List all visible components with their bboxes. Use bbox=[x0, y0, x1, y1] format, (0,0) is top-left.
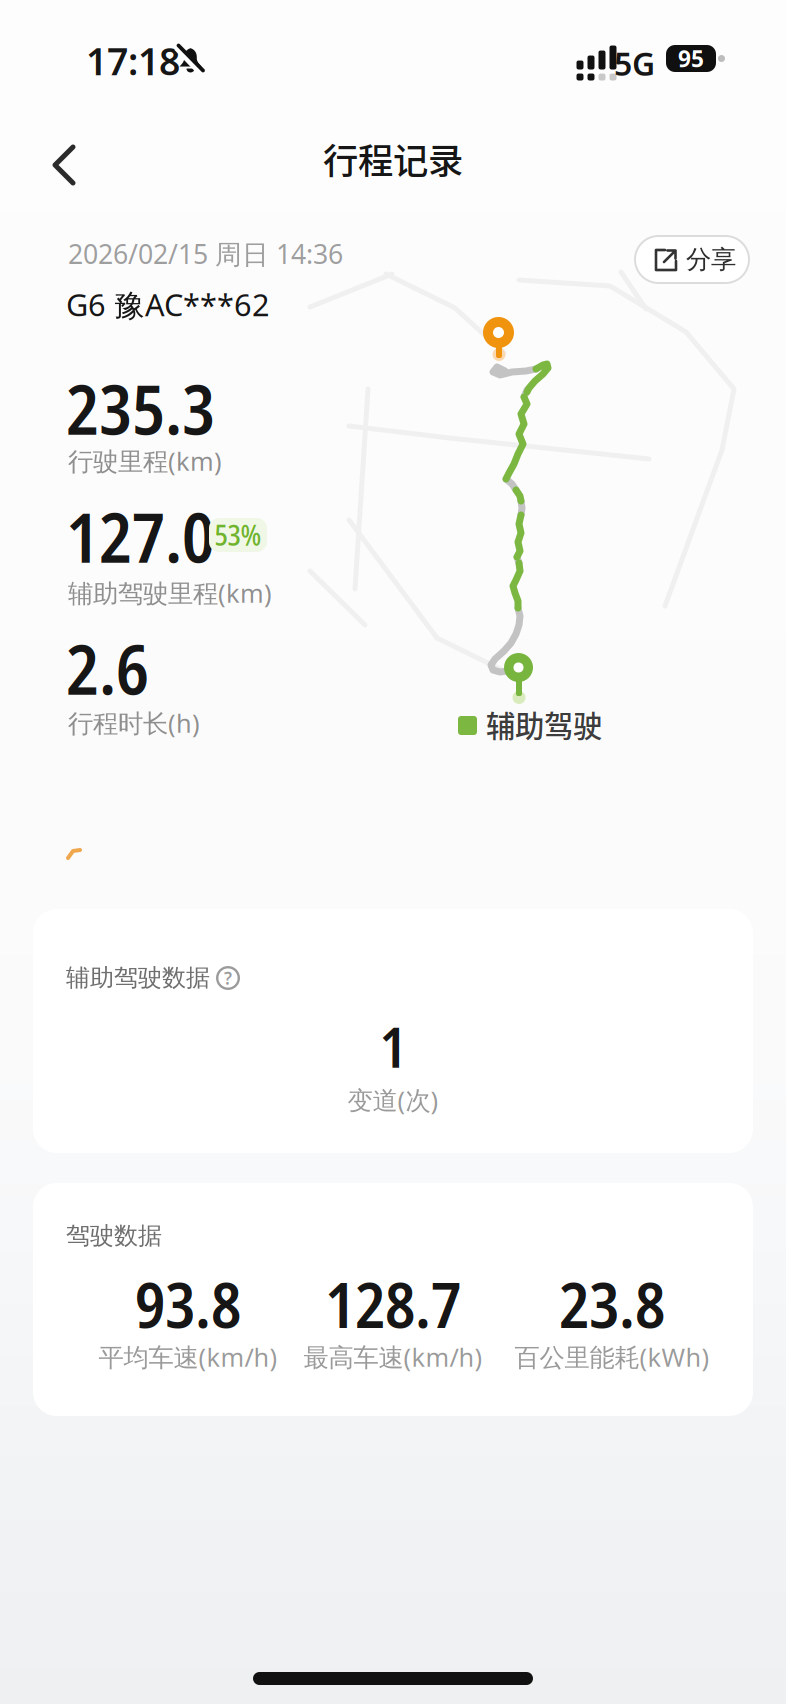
staticText: 分享 bbox=[686, 244, 736, 275]
staticText: 驾驶数据 bbox=[66, 1221, 162, 1250]
staticText: 行程时长(h) bbox=[68, 706, 200, 740]
button[interactable]: 分享 bbox=[634, 235, 750, 284]
staticText: 128.7 bbox=[325, 1261, 461, 1346]
staticText: 235.3 bbox=[66, 362, 215, 455]
staticText: 17:18 bbox=[86, 36, 180, 86]
staticText: 辅助驾驶数据 bbox=[66, 963, 210, 992]
staticText: 127.0 bbox=[66, 490, 215, 583]
staticText: 53% bbox=[214, 516, 261, 554]
staticText: 辅助驾驶里程(km) bbox=[68, 576, 272, 610]
staticText: 95 bbox=[678, 43, 704, 73]
staticText: 93.8 bbox=[135, 1261, 241, 1346]
staticText: 百公里能耗(kWh) bbox=[514, 1340, 709, 1374]
staticText: 行程记录 bbox=[323, 133, 463, 184]
staticText: 2026/02/15 周日 14:36 bbox=[68, 236, 343, 271]
staticText: 辅助驾驶 bbox=[486, 703, 602, 745]
button[interactable]: 返回 bbox=[38, 131, 90, 199]
staticText: 变道(次) bbox=[347, 1083, 438, 1117]
staticText: 5G bbox=[614, 42, 655, 84]
staticText: 1 bbox=[379, 1008, 406, 1084]
staticText: 2.6 bbox=[66, 622, 149, 715]
staticText: 行驶里程(km) bbox=[68, 444, 222, 478]
staticText: G6 豫AC***62 bbox=[66, 284, 270, 325]
staticText: 23.8 bbox=[559, 1261, 665, 1346]
button[interactable]: 帮助 bbox=[216, 966, 240, 990]
staticText: ? bbox=[224, 966, 232, 989]
staticText: 最高车速(km/h) bbox=[303, 1340, 482, 1374]
staticText: 平均车速(km/h) bbox=[98, 1340, 277, 1374]
